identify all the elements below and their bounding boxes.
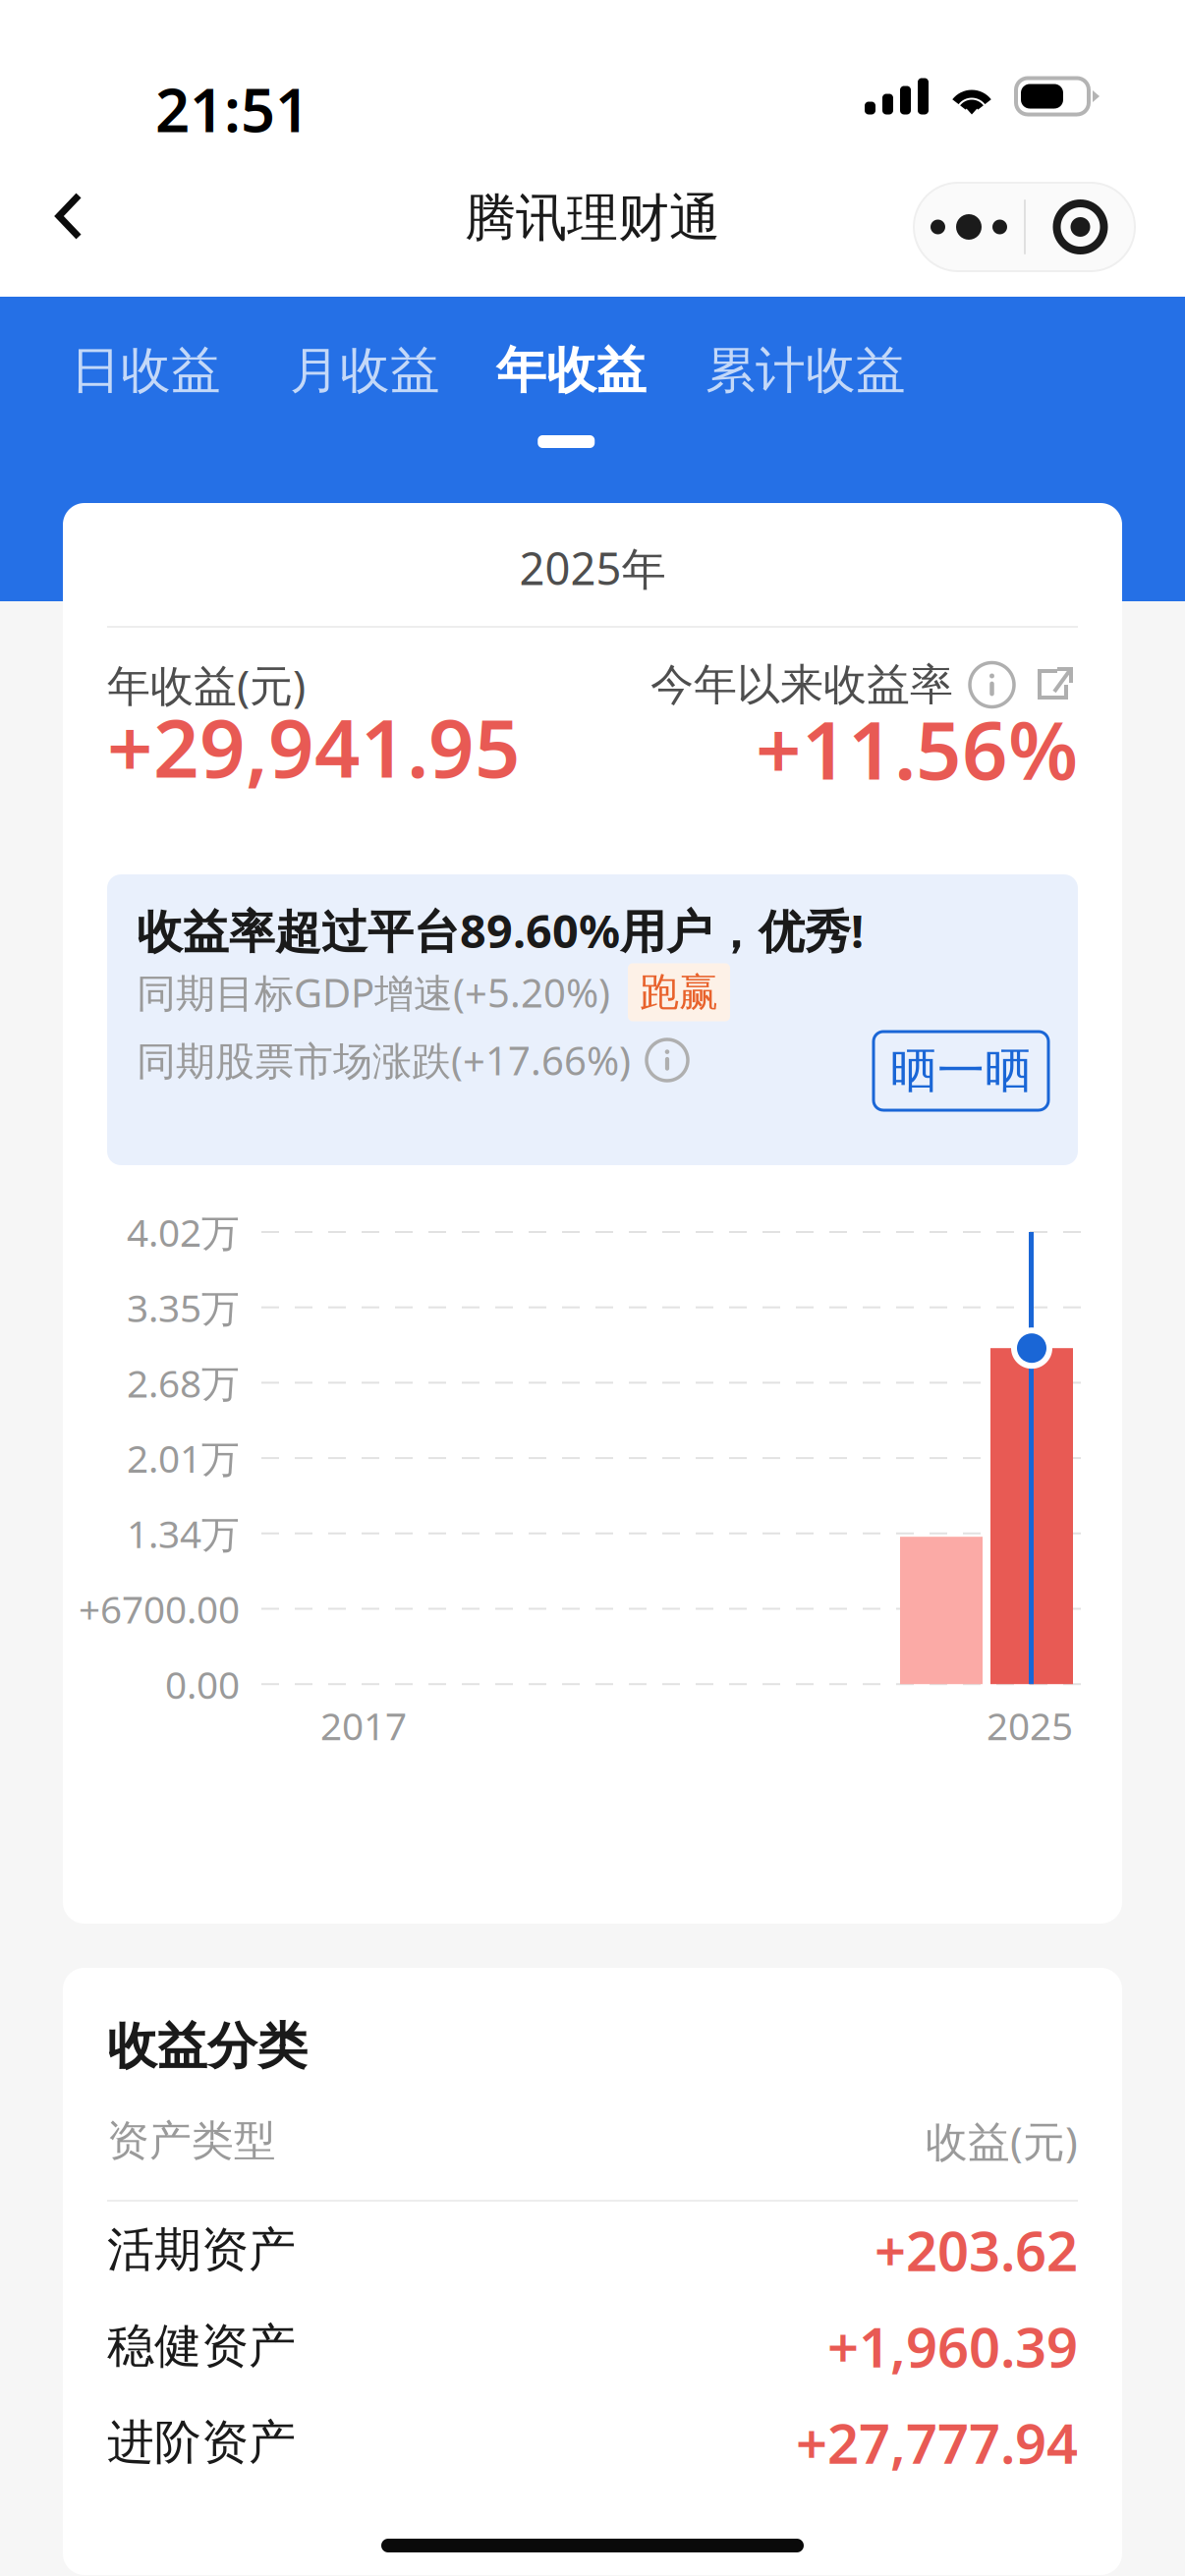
button[interactable]: 年收益 xyxy=(440,297,647,503)
button[interactable]: 更多 xyxy=(914,183,1024,271)
staticText: 4.02万 xyxy=(127,1207,240,1257)
staticText: 2025 xyxy=(987,1700,1073,1751)
staticText: 资产类型 xyxy=(107,2115,276,2167)
staticText: +6700.00 xyxy=(79,1584,240,1634)
staticText: 21:51 xyxy=(155,69,310,149)
button[interactable]: 累计收益 xyxy=(647,297,906,503)
staticText: 进阶资产 xyxy=(107,2413,296,2471)
staticText: 3.35万 xyxy=(127,1282,240,1333)
staticText: 今年以来收益率 xyxy=(650,658,953,711)
staticText: +11.56% xyxy=(756,696,1078,802)
staticText: 收益率超过平台89.60%用户，优秀! xyxy=(137,900,864,961)
button[interactable]: 晒一晒 xyxy=(874,1032,1048,1110)
button[interactable]: 日收益 xyxy=(0,297,221,503)
staticText: +29,941.95 xyxy=(107,694,521,800)
staticText: 收益分类 xyxy=(107,2016,308,2077)
staticText: 晒一晒 xyxy=(890,1042,1032,1100)
staticText: 2017 xyxy=(320,1700,407,1751)
staticText: 同期股票市场涨跌(+17.66%) xyxy=(137,1034,631,1086)
staticText: 2.01万 xyxy=(127,1433,240,1483)
staticText: 收益(元) xyxy=(926,2113,1078,2169)
staticText: 日收益 xyxy=(71,340,221,401)
staticText: 同期目标GDP增速(+5.20%) xyxy=(137,966,610,1018)
staticText: +1,960.39 xyxy=(827,2310,1078,2383)
button[interactable]: 返回 xyxy=(14,161,124,271)
button[interactable]: 稳健资产 xyxy=(107,2298,1078,2394)
staticText: 1.34万 xyxy=(127,1508,240,1559)
button[interactable]: 活期资产 xyxy=(107,2202,1078,2298)
staticText: 年收益(元) xyxy=(107,656,306,713)
staticText: 0.00 xyxy=(165,1659,240,1709)
staticText: 腾讯理财通 xyxy=(465,187,720,250)
staticText: 活期资产 xyxy=(107,2221,296,2279)
staticText: 累计收益 xyxy=(705,340,906,401)
staticText: 月收益 xyxy=(290,340,440,401)
staticText: +203.62 xyxy=(875,2213,1078,2286)
staticText: 年收益 xyxy=(496,340,647,401)
staticText: +27,777.94 xyxy=(796,2406,1078,2479)
staticText: 稳健资产 xyxy=(107,2317,296,2375)
staticText: 2025年 xyxy=(519,538,666,597)
staticText: 2.68万 xyxy=(127,1357,240,1408)
button[interactable]: 关闭 xyxy=(1026,183,1135,271)
button[interactable]: 进阶资产 xyxy=(107,2394,1078,2491)
button[interactable]: 月收益 xyxy=(221,297,440,503)
staticText: 跑赢 xyxy=(640,968,718,1016)
